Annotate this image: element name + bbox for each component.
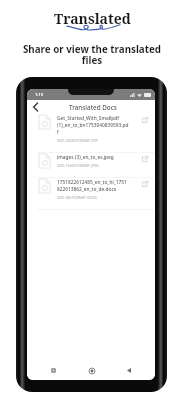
button[interactable]: Share (140, 179, 149, 188)
staticText: SIZE: 23049 FORMAT: PDF (57, 138, 98, 143)
staticText: Translated (54, 9, 131, 28)
button[interactable]: 1751822612485_en_to_hi_1751 822613862_en… (27, 178, 155, 210)
staticText: Get_Started_With_Smallpdf (1)_en_to_bn17… (57, 115, 129, 136)
staticText: images (3)_en_to_es.jpeg (57, 154, 114, 161)
button[interactable]: images (3)_en_to_es.jpeg (27, 153, 155, 178)
staticText: Translated Docs (69, 103, 117, 112)
button[interactable]: Share (140, 115, 149, 124)
button[interactable]: Home (86, 365, 97, 376)
staticText: 1:19 (35, 92, 43, 97)
button[interactable]: Back (28, 100, 42, 114)
staticText: Share or view the translated files (0, 43, 184, 67)
staticText: 1751822612485_en_to_hi_1751 822613862_en… (57, 179, 127, 193)
button[interactable]: Share (140, 154, 149, 163)
button[interactable]: Back (123, 365, 134, 376)
button[interactable]: Get_Started_With_Smallpdf (1)_en_to_bn17… (27, 114, 155, 153)
staticText: SIZE: 946 FORMAT: DOCX (57, 195, 97, 200)
staticText: SIZE: 15460 FORMAT: JPEG (57, 163, 99, 168)
button[interactable]: Recent apps (48, 365, 59, 376)
